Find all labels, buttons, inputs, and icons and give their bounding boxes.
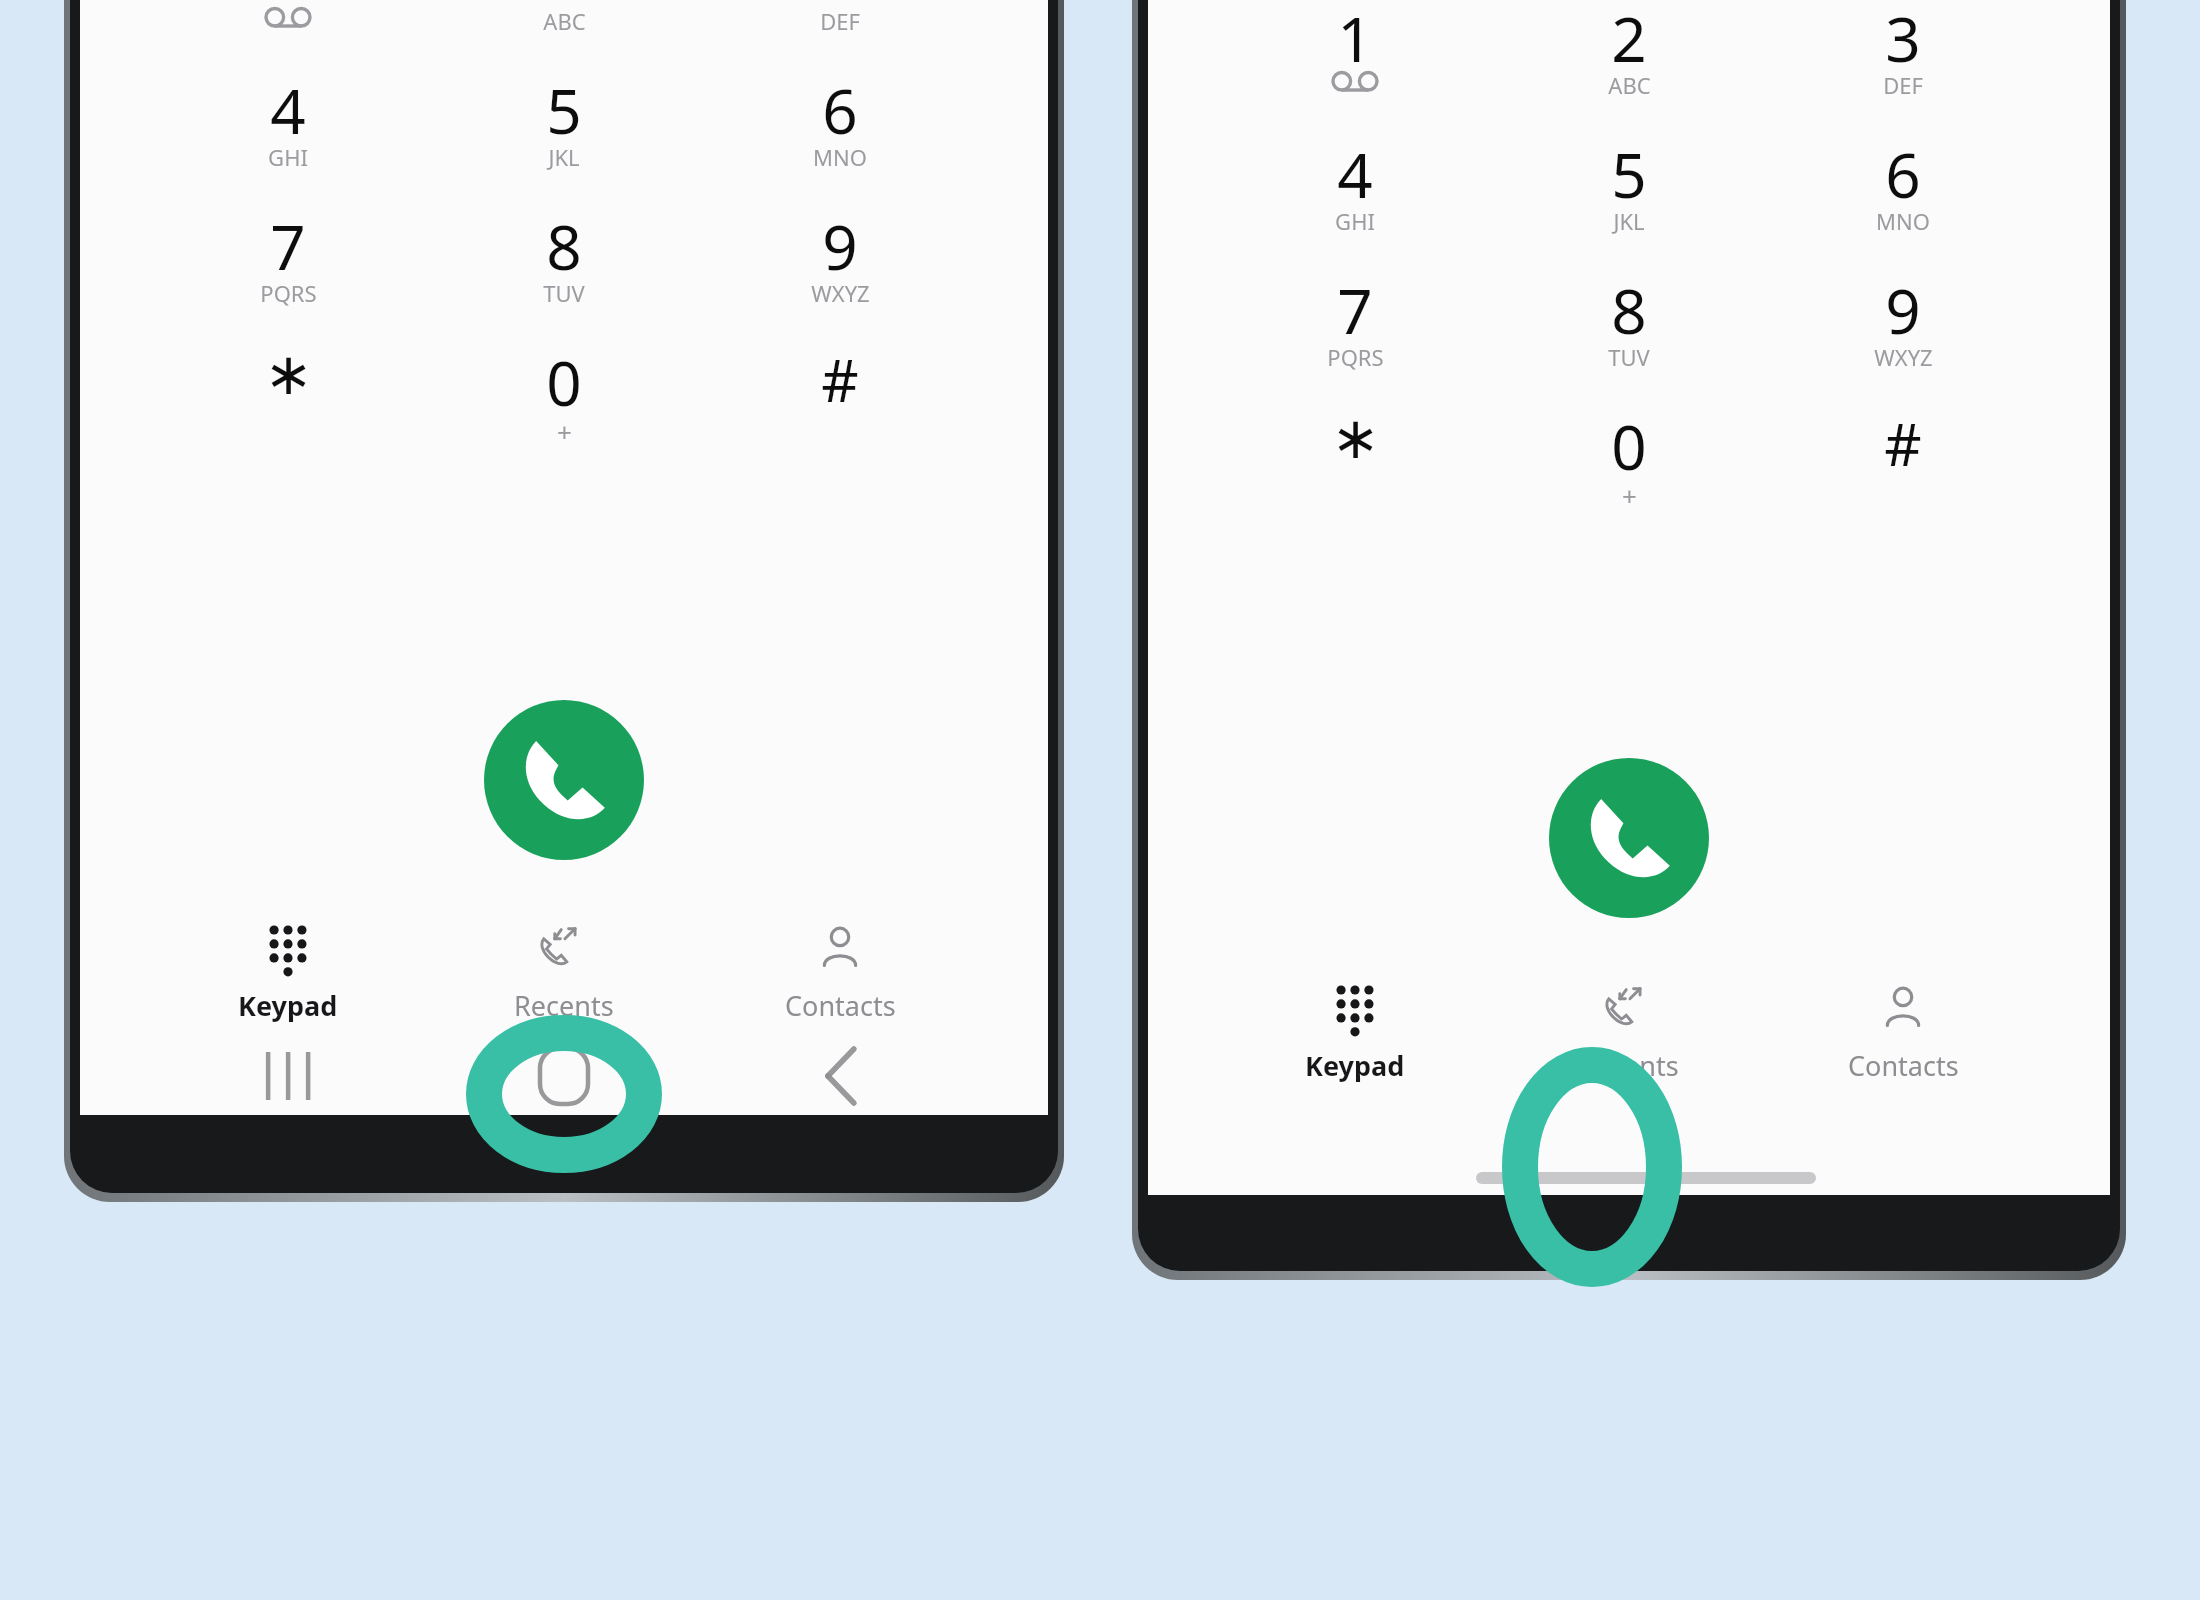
staticText: 7 bbox=[270, 204, 306, 288]
staticText: # bbox=[821, 340, 859, 419]
button[interactable]: 8 bbox=[454, 204, 674, 336]
staticText: TUV bbox=[543, 278, 585, 308]
button[interactable]: 0 bbox=[1519, 404, 1739, 536]
staticText: GHI bbox=[1335, 206, 1375, 236]
staticText: PQRS bbox=[1327, 342, 1384, 372]
button[interactable]: Contacts bbox=[1753, 971, 2053, 1091]
staticText: Recents bbox=[1579, 1047, 1679, 1084]
button[interactable]: 6 bbox=[1793, 132, 2013, 264]
staticText: MNO bbox=[813, 142, 867, 172]
button[interactable]: 4 bbox=[1245, 132, 1465, 264]
staticText: 3 bbox=[1885, 0, 1921, 80]
staticText: 1 bbox=[1337, 0, 1373, 80]
staticText: Contacts bbox=[785, 987, 896, 1024]
staticText: PQRS bbox=[260, 278, 317, 308]
staticText: 4 bbox=[1337, 132, 1373, 216]
staticText: 0 bbox=[1611, 404, 1647, 488]
staticText: + bbox=[1622, 478, 1637, 513]
button[interactable]: 7 bbox=[1245, 268, 1465, 400]
staticText: WXYZ bbox=[1874, 342, 1933, 372]
staticText: JKL bbox=[1613, 206, 1645, 236]
staticText: TUV bbox=[1608, 342, 1650, 372]
staticText: 4 bbox=[270, 68, 306, 152]
button[interactable]: 2 bbox=[454, 0, 674, 64]
staticText: ∗ bbox=[264, 340, 313, 408]
staticText: MNO bbox=[1876, 206, 1930, 236]
staticText: Keypad bbox=[1305, 1047, 1405, 1084]
button[interactable]: Call bbox=[1549, 758, 1709, 918]
button[interactable]: Keypad bbox=[1205, 971, 1505, 1091]
button[interactable]: 1 bbox=[1245, 0, 1465, 128]
button[interactable]: Keypad bbox=[138, 911, 438, 1031]
staticText: 0 bbox=[546, 340, 582, 424]
staticText: # bbox=[1884, 404, 1922, 483]
button[interactable]: 5 bbox=[1519, 132, 1739, 264]
staticText: DEF bbox=[1883, 70, 1923, 100]
staticText: 8 bbox=[1611, 268, 1647, 352]
button[interactable]: 7 bbox=[178, 204, 398, 336]
button[interactable]: 9 bbox=[1793, 268, 2013, 400]
staticText: 7 bbox=[1337, 268, 1373, 352]
button[interactable]: ∗ bbox=[1245, 404, 1465, 536]
button[interactable]: # bbox=[1793, 404, 2013, 536]
button[interactable]: 4 bbox=[178, 68, 398, 200]
button[interactable]: Recents bbox=[414, 911, 714, 1031]
staticText: 5 bbox=[546, 68, 582, 152]
staticText: 2 bbox=[546, 0, 582, 16]
button[interactable]: 2 bbox=[1519, 0, 1739, 128]
button[interactable]: 6 bbox=[730, 68, 950, 200]
button[interactable]: 9 bbox=[730, 204, 950, 336]
button[interactable]: 5 bbox=[454, 68, 674, 200]
button[interactable]: # bbox=[730, 340, 950, 472]
button[interactable]: 3 bbox=[1793, 0, 2013, 128]
button[interactable]: ∗ bbox=[178, 340, 398, 472]
button[interactable]: 8 bbox=[1519, 268, 1739, 400]
staticText: ∗ bbox=[1331, 404, 1380, 472]
button[interactable]: Call bbox=[484, 700, 644, 860]
staticText: Recents bbox=[514, 987, 614, 1024]
staticText: 9 bbox=[822, 204, 858, 288]
staticText: 6 bbox=[822, 68, 858, 152]
staticText: 5 bbox=[1611, 132, 1647, 216]
staticText: DEF bbox=[820, 6, 860, 36]
staticText: Contacts bbox=[1848, 1047, 1959, 1084]
button[interactable]: 1 bbox=[178, 0, 398, 64]
button[interactable]: 0 bbox=[454, 340, 674, 472]
staticText: 3 bbox=[822, 0, 858, 16]
staticText: ABC bbox=[1608, 70, 1651, 100]
staticText: 2 bbox=[1611, 0, 1647, 80]
staticText: GHI bbox=[268, 142, 308, 172]
staticText: JKL bbox=[548, 142, 580, 172]
staticText: + bbox=[557, 414, 572, 449]
staticText: WXYZ bbox=[811, 278, 870, 308]
staticText: 1 bbox=[270, 0, 306, 16]
button[interactable]: Contacts bbox=[690, 911, 990, 1031]
button[interactable]: Recents bbox=[1479, 971, 1779, 1091]
staticText: 6 bbox=[1885, 132, 1921, 216]
staticText: 9 bbox=[1885, 268, 1921, 352]
staticText: Keypad bbox=[238, 987, 338, 1024]
staticText: 8 bbox=[546, 204, 582, 288]
button[interactable]: 3 bbox=[730, 0, 950, 64]
staticText: ABC bbox=[543, 6, 586, 36]
